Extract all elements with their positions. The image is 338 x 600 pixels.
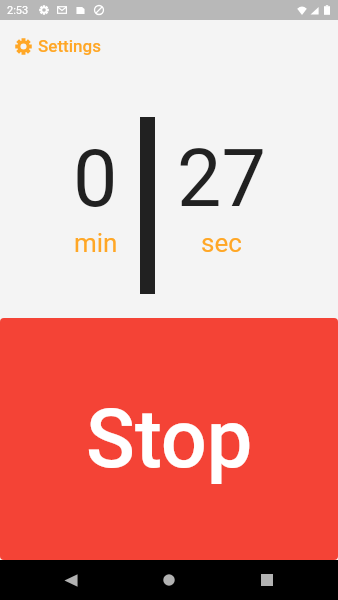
staticText: sec <box>201 228 242 258</box>
staticText: 2:53 <box>7 4 29 17</box>
staticText: 27 <box>177 133 266 226</box>
staticText: Settings <box>38 36 101 56</box>
staticText: Stop <box>86 392 253 487</box>
staticText: 0 <box>73 133 118 226</box>
staticText: min <box>74 228 118 258</box>
button[interactable]: Stop <box>0 318 338 560</box>
button[interactable]: Settings <box>0 20 338 72</box>
button[interactable]: Recents <box>218 560 316 600</box>
button[interactable]: Home <box>120 560 218 600</box>
button[interactable]: Back <box>22 560 120 600</box>
